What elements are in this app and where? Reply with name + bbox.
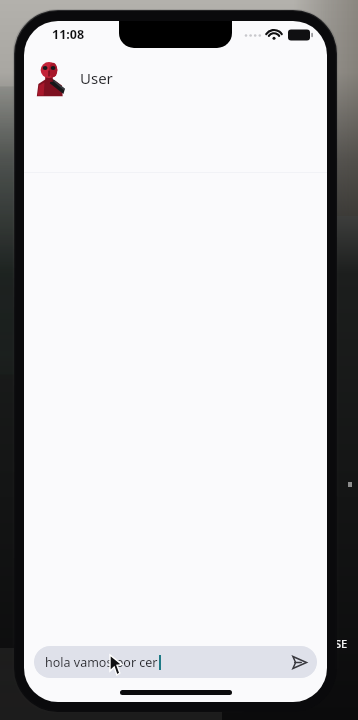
- button[interactable]: hola vamos por cer: [34, 646, 317, 678]
- button[interactable]: Send: [284, 647, 314, 677]
- staticText: hola vamos por cer: [45, 654, 158, 671]
- staticText: User: [80, 68, 113, 88]
- staticText: SE: [335, 636, 348, 651]
- button[interactable]: User: [24, 52, 327, 104]
- staticText: 11:08: [52, 26, 85, 43]
